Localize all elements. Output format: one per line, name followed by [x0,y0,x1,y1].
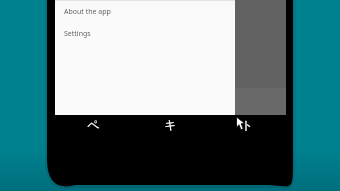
staticText: Settings [64,29,91,39]
button[interactable]: To tab [209,115,286,141]
staticText: キ [164,117,177,132]
staticText: ペ [87,117,100,132]
button[interactable]: About the app [55,1,235,23]
staticText: About the app [64,7,111,17]
staticText: ト [241,117,254,132]
button[interactable]: Pe tab [55,115,132,141]
button[interactable]: Ki tab [132,115,209,141]
button[interactable]: Settings [55,23,235,45]
